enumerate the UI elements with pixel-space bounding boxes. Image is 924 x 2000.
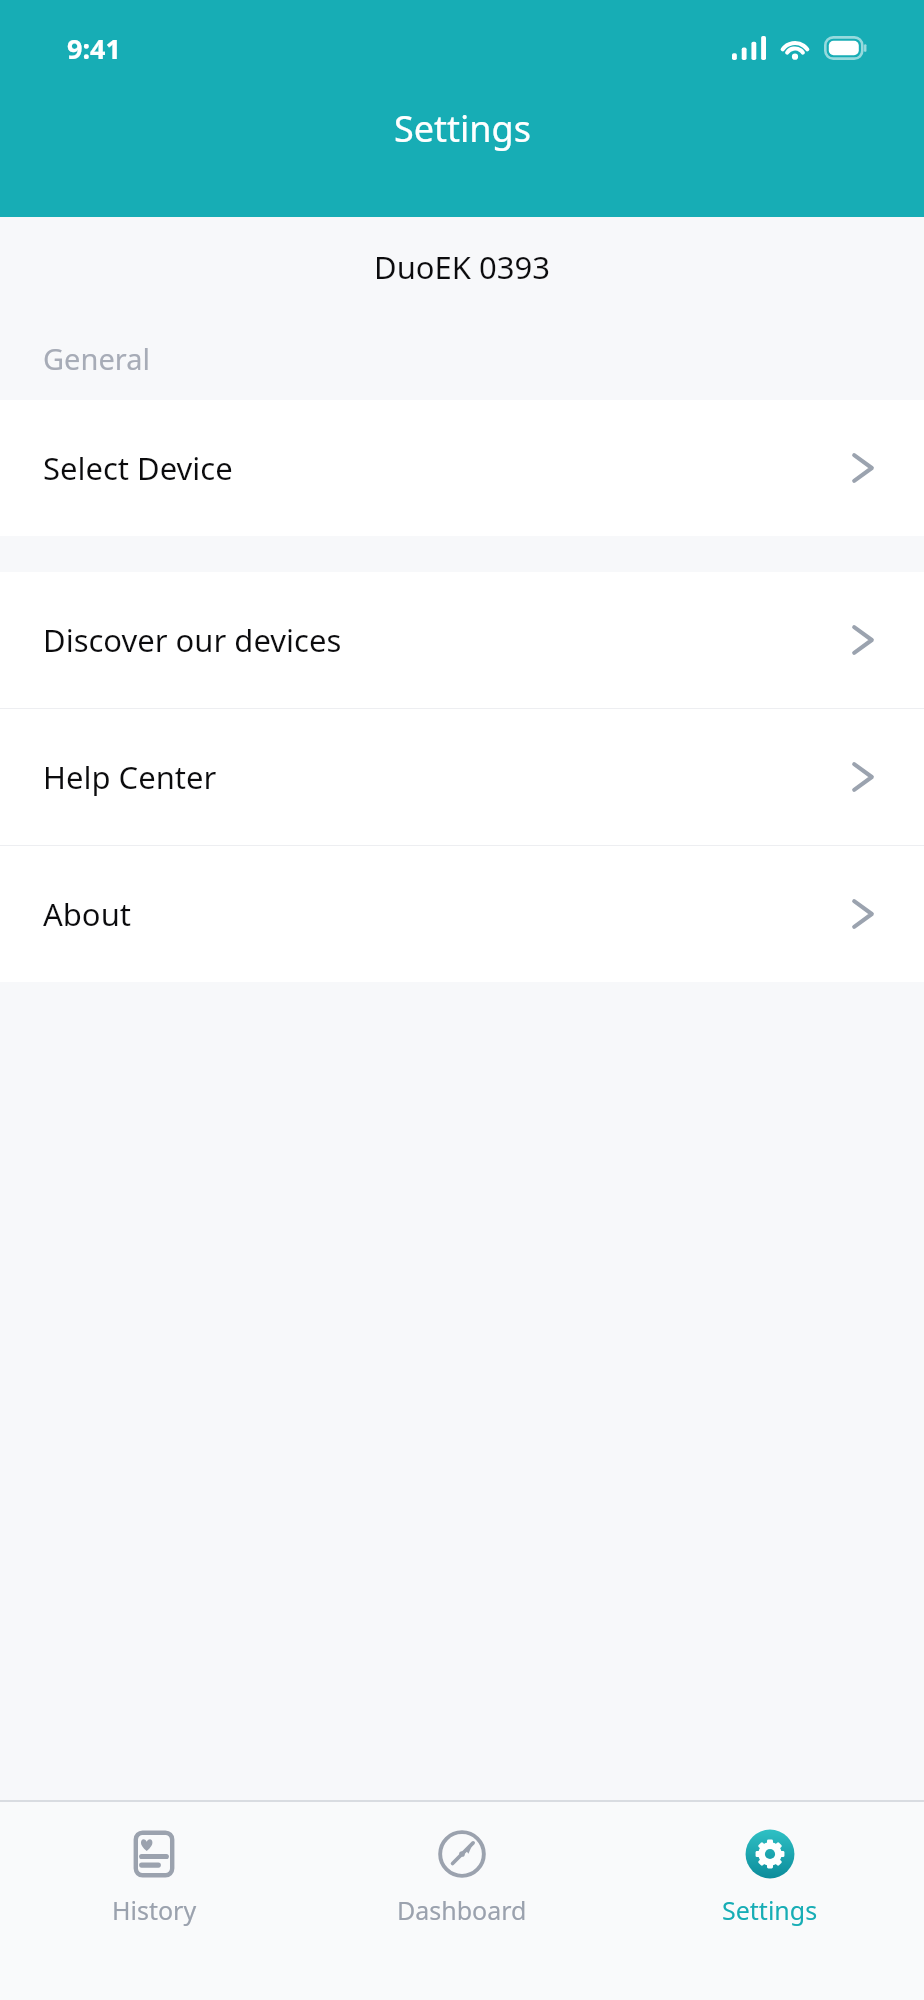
staticText: DuoEK 0393 <box>374 246 550 288</box>
staticText: General <box>43 339 150 378</box>
button[interactable]: Discover our devices <box>0 572 924 708</box>
staticText: 9:41 <box>67 30 121 67</box>
other: History <box>128 1828 180 1880</box>
staticText: Help Center <box>43 756 850 798</box>
button[interactable]: Help Center <box>0 709 924 845</box>
staticText: Settings <box>394 104 531 153</box>
button[interactable]: About <box>0 846 924 982</box>
staticText: Settings <box>722 1893 818 1927</box>
staticText: Discover our devices <box>43 619 850 661</box>
other: Settings <box>744 1828 796 1880</box>
staticText: Dashboard <box>397 1893 527 1927</box>
other: Dashboard <box>436 1828 488 1880</box>
staticText: Select Device <box>43 447 850 489</box>
button[interactable]: Select Device <box>0 400 924 536</box>
button[interactable]: Dashboard <box>308 1802 616 2000</box>
button[interactable]: History <box>0 1802 308 2000</box>
staticText: History <box>112 1893 197 1927</box>
button[interactable]: Settings <box>616 1802 924 2000</box>
staticText: About <box>43 893 850 935</box>
